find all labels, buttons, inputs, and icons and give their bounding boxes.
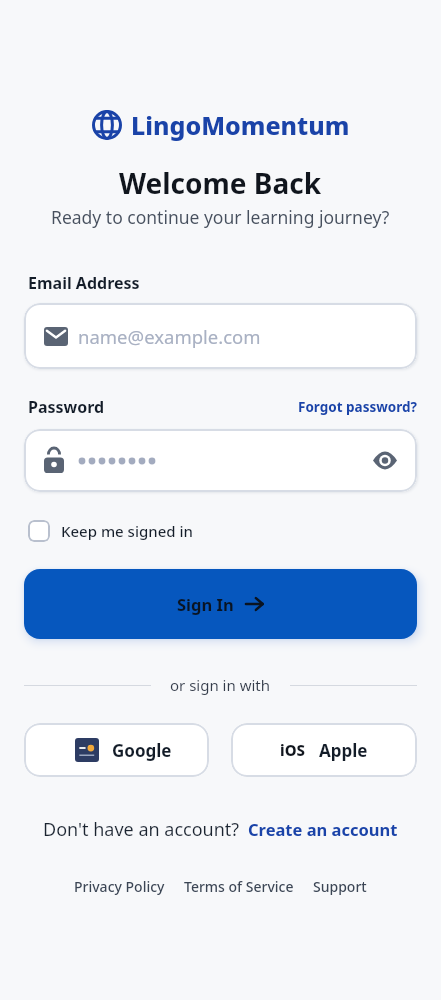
staticText: or sign in with <box>170 675 271 695</box>
staticText: Email Address <box>28 272 140 294</box>
staticText: Welcome Back <box>119 164 322 202</box>
staticText: Keep me signed in <box>61 521 193 541</box>
button[interactable] <box>24 429 417 492</box>
staticText: Password <box>28 396 105 418</box>
staticText: Sign In <box>177 593 234 615</box>
staticText: Don't have an account? <box>43 817 240 842</box>
button[interactable]: iOS <box>231 723 417 777</box>
button[interactable]: Create an account <box>248 819 398 839</box>
staticText: name@example.com <box>78 324 261 349</box>
button[interactable]: Google <box>24 723 209 777</box>
button[interactable]: Privacy Policy <box>74 877 165 895</box>
staticText: Google <box>112 739 172 762</box>
staticText: iOS <box>280 740 306 760</box>
button[interactable]: Support <box>313 877 367 895</box>
staticText: Forgot password? <box>298 398 417 416</box>
button[interactable]: name@example.com <box>24 303 417 369</box>
button[interactable]: Keep me signed in <box>28 520 193 542</box>
button[interactable]: Sign In <box>24 569 417 639</box>
button[interactable]: Terms of Service <box>184 877 294 895</box>
button[interactable]: Forgot password? <box>298 398 417 416</box>
staticText: Apple <box>319 739 368 762</box>
staticText: LingoMomentum <box>131 108 350 142</box>
staticText: Ready to continue your learning journey? <box>51 205 390 229</box>
